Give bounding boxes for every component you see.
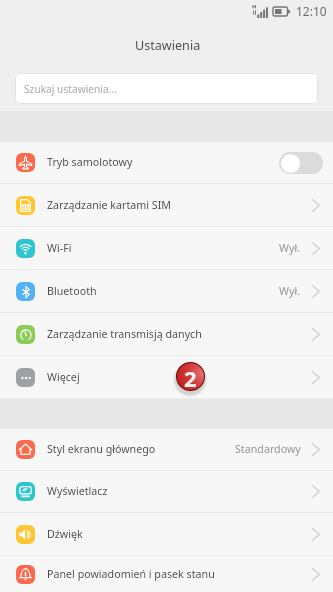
staticText: Bluetooth — [47, 284, 97, 299]
staticText: Wył. — [279, 284, 301, 299]
staticText: Zarządzanie kartami SIM — [47, 198, 171, 213]
staticText: Dźwięk — [47, 527, 83, 542]
button[interactable]: Dźwięk — [0, 513, 333, 556]
button[interactable]: Szukaj ustawienia... — [15, 73, 318, 104]
staticText: 2 — [184, 363, 197, 390]
staticText: Styl ekranu głównego — [47, 442, 156, 457]
staticText: Tryb samolotowy — [47, 155, 133, 170]
staticText: Zarządzanie transmisją danych — [47, 327, 202, 342]
staticText: Wyświetlacz — [47, 484, 108, 499]
button[interactable]: Wi-Fi — [0, 227, 333, 270]
button[interactable]: Panel powiadomień i pasek stanu — [0, 556, 333, 592]
staticText: Wi-Fi — [47, 241, 72, 256]
staticText: 12:10 — [296, 3, 327, 19]
staticText: Standardowy — [235, 442, 301, 457]
button[interactable]: Zarządzanie transmisją danych — [0, 313, 333, 356]
staticText: Ustawienia — [135, 37, 201, 54]
staticText: Panel powiadomień i pasek stanu — [47, 567, 215, 582]
button[interactable]: Styl ekranu głównego — [0, 429, 333, 471]
button[interactable]: Więcej — [0, 356, 333, 399]
button[interactable]: Bluetooth — [0, 270, 333, 313]
button[interactable]: Wyświetlacz — [0, 471, 333, 513]
staticText: Szukaj ustawienia... — [24, 82, 117, 96]
button[interactable]: Tryb samolotowy — [0, 142, 333, 184]
staticText: Wył. — [279, 241, 301, 256]
button[interactable]: Zarządzanie kartami SIM — [0, 184, 333, 227]
staticText: Więcej — [47, 370, 80, 385]
